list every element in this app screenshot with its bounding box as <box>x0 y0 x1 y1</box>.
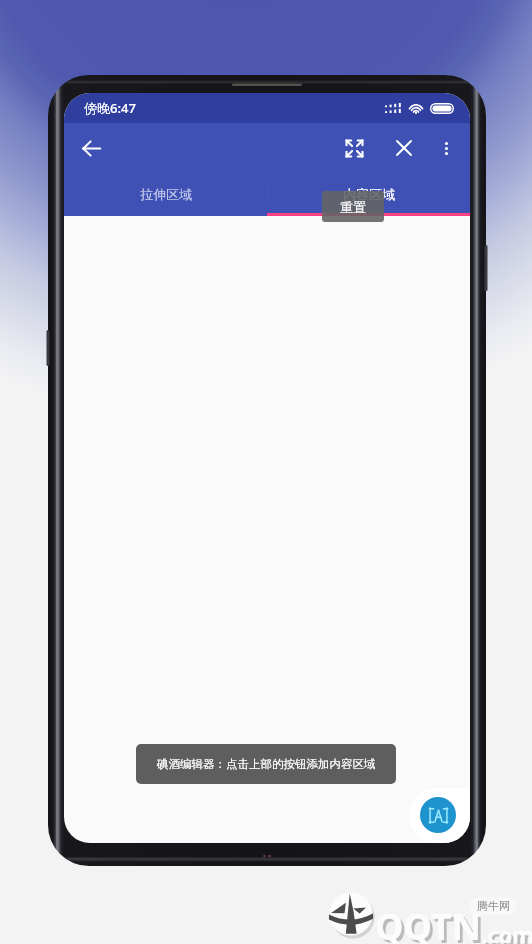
button[interactable]: Fullscreen <box>328 126 380 170</box>
staticText: 腾牛网 <box>477 899 510 913</box>
staticText: 碘酒编辑器：点击上部的按钮添加内容区域 <box>157 757 376 771</box>
button[interactable]: 拉伸区域 <box>64 172 267 216</box>
staticText: 重置 <box>340 199 366 215</box>
staticText: QQTN <box>378 905 484 944</box>
button[interactable]: 碘酒编辑器：点击上部的按钮添加内容区域 <box>136 744 396 784</box>
button[interactable]: More options <box>428 126 464 170</box>
button[interactable]: Close <box>380 126 428 170</box>
button[interactable]: 内容区域 <box>267 172 470 216</box>
staticText: .com <box>481 919 532 944</box>
staticText: 傍晚6:47 <box>84 99 136 117</box>
staticText: .com <box>484 922 532 944</box>
button[interactable]: Back <box>70 127 112 169</box>
button[interactable]: Add content area <box>409 788 470 843</box>
staticText: 拉伸区域 <box>140 186 192 202</box>
staticText: 内容区域 <box>343 186 395 202</box>
staticText: QQTN <box>375 902 481 944</box>
